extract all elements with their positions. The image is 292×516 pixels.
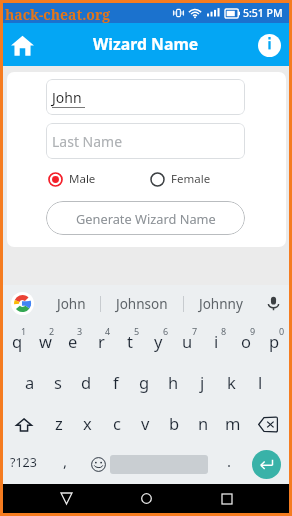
button[interactable]: x — [73, 404, 102, 445]
staticText: 5:51 PM — [243, 6, 283, 20]
staticText: l — [258, 371, 263, 393]
staticText: g — [139, 371, 150, 393]
staticText: John — [52, 88, 82, 107]
staticText: Wizard Name — [93, 33, 199, 55]
button[interactable]: 0 — [260, 322, 289, 363]
staticText: Johnson — [116, 295, 168, 313]
staticText: n — [198, 412, 209, 434]
staticText: hack-cheat.org — [5, 5, 111, 24]
staticText: w — [39, 330, 52, 352]
staticText: 7 — [192, 325, 198, 337]
button[interactable]: h — [159, 363, 188, 404]
button[interactable]: Enter — [252, 450, 281, 479]
button[interactable]: 1 — [3, 322, 31, 363]
button[interactable]: Backspace — [247, 404, 289, 445]
staticText: k — [227, 371, 236, 393]
staticText: . — [227, 451, 232, 471]
staticText: 2 — [49, 325, 55, 337]
button[interactable]: l — [246, 363, 275, 404]
button[interactable]: 8 — [202, 322, 231, 363]
button[interactable]: k — [217, 363, 246, 404]
staticText: b — [169, 412, 180, 434]
button[interactable]: z — [44, 404, 73, 445]
button[interactable]: Last Name — [46, 123, 245, 159]
staticText: s — [54, 371, 62, 393]
button[interactable]: Generate Wizard Name — [46, 201, 245, 235]
button[interactable]: , — [44, 445, 86, 484]
button[interactable]: f — [101, 363, 130, 404]
staticText: t — [127, 330, 133, 352]
button[interactable]: Recents — [209, 484, 245, 513]
button[interactable]: 7 — [173, 322, 202, 363]
staticText: ?123 — [10, 454, 37, 471]
button[interactable]: . — [208, 445, 250, 484]
staticText: v — [141, 412, 150, 434]
button[interactable]: d — [72, 363, 101, 404]
button[interactable]: s — [44, 363, 72, 404]
staticText: Johnny — [199, 295, 243, 313]
staticText: f — [113, 371, 119, 393]
button[interactable]: 4 — [87, 322, 115, 363]
staticText: 8 — [221, 325, 227, 337]
button[interactable]: n — [189, 404, 218, 445]
button[interactable]: 6 — [144, 322, 173, 363]
staticText: 0 — [279, 325, 285, 337]
button[interactable]: c — [102, 404, 131, 445]
staticText: p — [269, 330, 280, 352]
button[interactable]: v — [131, 404, 160, 445]
button[interactable]: John — [42, 285, 100, 322]
button[interactable]: Johnny — [184, 285, 258, 322]
button[interactable]: John — [46, 79, 245, 115]
button[interactable]: m — [218, 404, 247, 445]
button[interactable]: Voice input — [258, 285, 289, 322]
staticText: 6 — [163, 325, 169, 337]
button[interactable]: 2 — [31, 322, 59, 363]
staticText: u — [182, 330, 193, 352]
button[interactable]: Info — [254, 30, 284, 60]
button[interactable]: a — [16, 363, 44, 404]
staticText: h — [168, 371, 179, 393]
staticText: Female — [171, 171, 211, 187]
staticText: 9 — [250, 325, 256, 337]
staticText: o — [241, 330, 251, 352]
staticText: 1 — [21, 325, 27, 337]
button[interactable]: 3 — [59, 322, 87, 363]
staticText: c — [113, 412, 121, 434]
button[interactable]: Male — [48, 171, 96, 187]
staticText: 3 — [77, 325, 83, 337]
button[interactable]: 5 — [115, 322, 144, 363]
staticText: r — [98, 330, 105, 352]
staticText: 5 — [134, 325, 140, 337]
button[interactable]: Female — [150, 171, 211, 187]
button[interactable]: 9 — [231, 322, 260, 363]
button[interactable]: ?123 — [3, 445, 44, 484]
button[interactable]: j — [188, 363, 217, 404]
staticText: e — [68, 330, 78, 352]
staticText: John — [57, 295, 86, 313]
button[interactable]: b — [160, 404, 189, 445]
button[interactable]: Johnson — [101, 285, 183, 322]
button[interactable]: g — [130, 363, 159, 404]
button[interactable]: Back — [48, 484, 84, 513]
staticText: Generate Wizard Name — [76, 210, 216, 227]
staticText: Last Name — [52, 132, 123, 151]
button[interactable]: Emoji — [86, 445, 110, 484]
button[interactable]: Home — [128, 484, 164, 513]
staticText: d — [81, 371, 92, 393]
staticText: z — [55, 412, 63, 434]
staticText: x — [83, 412, 92, 434]
staticText: Male — [69, 171, 96, 187]
button[interactable]: Home — [7, 30, 37, 60]
staticText: , — [63, 451, 68, 471]
staticText: m — [225, 412, 241, 434]
staticText: q — [12, 330, 23, 352]
staticText: j — [200, 371, 205, 393]
staticText: i — [214, 330, 219, 352]
staticText: y — [154, 330, 163, 352]
staticText: a — [25, 371, 35, 393]
button[interactable]: Google — [3, 285, 42, 322]
staticText: 4 — [105, 325, 111, 337]
button[interactable]: Shift — [3, 404, 44, 445]
